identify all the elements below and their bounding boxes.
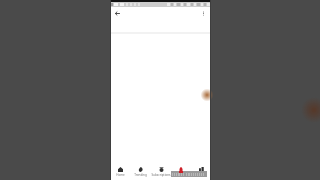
staticText: Library <box>196 173 206 177</box>
button[interactable]: Trending <box>130 160 150 180</box>
button[interactable]: Inbox <box>171 160 191 180</box>
button[interactable]: Home <box>110 160 130 180</box>
staticText: Inbox <box>177 174 186 178</box>
staticText: Home <box>116 173 125 177</box>
staticText: Trending <box>134 173 147 177</box>
button[interactable]: Back <box>111 7 124 20</box>
button[interactable]: More options <box>197 7 210 20</box>
button[interactable]: Library <box>191 160 211 180</box>
button[interactable]: Subscriptions <box>151 160 171 180</box>
staticText: Subscriptions <box>151 173 171 177</box>
